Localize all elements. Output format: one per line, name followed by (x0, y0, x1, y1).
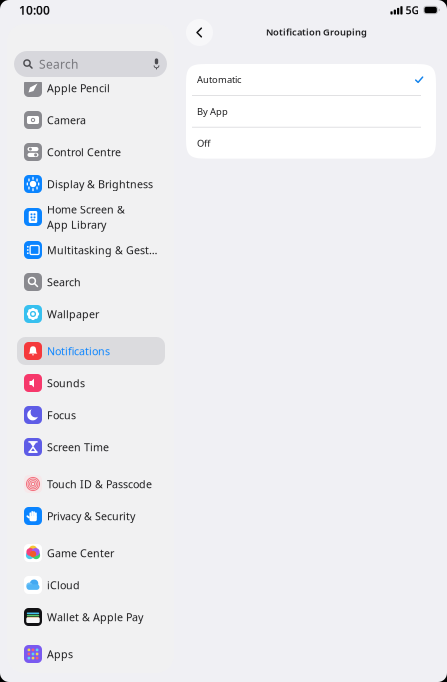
button[interactable]: Screen Time (17, 431, 165, 463)
staticText: Apps (47, 647, 73, 661)
button[interactable]: Apps (17, 638, 165, 670)
staticText: Focus (47, 408, 76, 422)
button[interactable]: Privacy & Security (17, 500, 165, 532)
staticText: By App (197, 105, 228, 117)
staticText: Wallet & Apple Pay (47, 610, 143, 624)
button[interactable]: Display & Brightness (17, 168, 165, 200)
staticText: Notification Grouping (266, 26, 367, 38)
button[interactable]: Multitasking & Gestures (17, 234, 165, 266)
button[interactable]: Search (14, 51, 167, 77)
staticText: Game Center (47, 546, 114, 560)
staticText: Display & Brightness (47, 177, 153, 191)
button[interactable]: Home Screen & (17, 200, 165, 234)
staticText: Wallpaper (47, 307, 99, 321)
button[interactable]: Notifications (17, 335, 165, 367)
button[interactable]: Focus (17, 399, 165, 431)
button[interactable]: Game Center (17, 537, 165, 569)
button[interactable]: Touch ID & Passcode (17, 468, 165, 500)
button[interactable]: Wallet & Apple Pay (17, 601, 165, 633)
staticText: 5G (405, 3, 419, 17)
button[interactable]: Back (186, 19, 213, 46)
staticText: Notifications (47, 344, 110, 358)
staticText: iCloud (47, 578, 80, 592)
button[interactable]: Control Centre (17, 136, 165, 168)
button[interactable]: Camera (17, 104, 165, 136)
staticText: Touch ID & Passcode (47, 477, 152, 491)
staticText: Search (39, 56, 78, 72)
staticText: Off (197, 137, 210, 149)
button[interactable]: Wallpaper (17, 298, 165, 330)
staticText: Camera (47, 113, 86, 127)
button[interactable]: Automatic (186, 64, 436, 95)
staticText: App Library (47, 217, 106, 232)
staticText: Screen Time (47, 440, 109, 454)
staticText: Automatic (197, 73, 241, 86)
staticText: Sounds (47, 376, 85, 390)
button[interactable]: Search (17, 266, 165, 298)
staticText: Search (47, 275, 81, 289)
staticText: Apple Pencil (47, 81, 110, 95)
staticText: Home Screen & (47, 202, 125, 216)
staticText: Privacy & Security (47, 509, 135, 523)
staticText: Control Centre (47, 145, 121, 159)
staticText: Multitasking & Gestures (47, 243, 160, 257)
button[interactable]: iCloud (17, 569, 165, 601)
button[interactable]: Sounds (17, 367, 165, 399)
button[interactable]: Apple Pencil (17, 72, 165, 104)
button[interactable]: By App (186, 96, 436, 127)
button[interactable]: Off (186, 128, 436, 159)
staticText: 10:00 (19, 2, 50, 18)
